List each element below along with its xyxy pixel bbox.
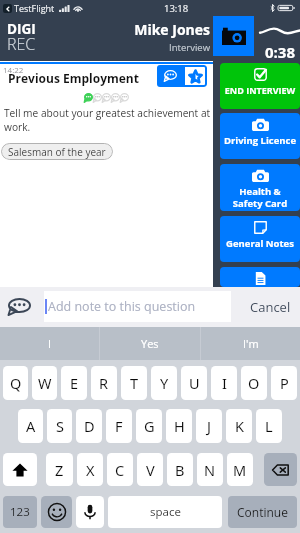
staticText: 0:38: [265, 42, 296, 62]
staticText: Previous Employment: [8, 70, 139, 86]
staticText: P: [280, 373, 289, 393]
button[interactable]: Continue: [228, 496, 297, 528]
button[interactable]: J: [196, 409, 222, 443]
button[interactable]: B: [167, 453, 193, 486]
staticText: END INTERVIEW: [220, 84, 300, 96]
button[interactable]: G: [136, 409, 162, 443]
staticText: TestFlight: [14, 2, 55, 14]
button[interactable]: A: [18, 409, 43, 443]
staticText: B: [175, 460, 185, 480]
button[interactable]: Cancel: [247, 291, 294, 323]
button[interactable]: D: [76, 409, 102, 443]
button[interactable]: Q: [3, 366, 28, 400]
staticText: Health & Safety Card: [220, 185, 300, 210]
staticText: J: [207, 416, 211, 436]
button[interactable]: O: [241, 366, 267, 400]
button[interactable]: Shift: [3, 453, 37, 486]
staticText: U: [189, 373, 200, 393]
button[interactable]: General Notes: [220, 216, 300, 262]
button[interactable]: Driving Licence: [220, 113, 300, 159]
staticText: T: [130, 373, 139, 393]
staticText: X: [86, 460, 95, 480]
staticText: S: [56, 416, 64, 436]
staticText: L: [265, 416, 273, 436]
button[interactable]: Backspace: [264, 453, 297, 486]
button[interactable]: END INTERVIEW: [220, 63, 300, 109]
staticText: Salesman of the year: [8, 145, 106, 159]
button[interactable]: Comments: [157, 65, 183, 87]
button[interactable]: [220, 267, 300, 287]
staticText: F: [115, 416, 123, 436]
staticText: V: [146, 460, 155, 480]
staticText: space: [150, 504, 181, 520]
staticText: 14:22: [3, 64, 24, 75]
button[interactable]: C: [107, 453, 133, 486]
button[interactable]: U: [181, 366, 207, 400]
staticText: Mike Jones: [134, 20, 210, 39]
button[interactable]: Health & Safety Card: [220, 164, 300, 211]
staticText: G: [144, 416, 155, 436]
staticText: Z: [55, 460, 64, 480]
staticText: I'm: [243, 336, 259, 351]
button[interactable]: M: [227, 453, 253, 486]
button[interactable]: F: [106, 409, 132, 443]
button[interactable]: Add note to this question: [44, 291, 231, 322]
button[interactable]: R: [91, 366, 117, 400]
staticText: I: [48, 336, 52, 351]
staticText: 13:18: [164, 2, 189, 15]
staticText: I: [222, 373, 227, 393]
button[interactable]: P: [271, 366, 297, 400]
staticText: General Notes: [220, 237, 300, 250]
button[interactable]: L: [256, 409, 282, 443]
button[interactable]: Salesman of the year: [1, 143, 113, 160]
staticText: DIGI: [7, 20, 36, 38]
button[interactable]: I: [0, 327, 99, 360]
button[interactable]: Y: [151, 366, 177, 400]
staticText: K: [235, 416, 244, 436]
button[interactable]: I'm: [201, 327, 300, 360]
staticText: D: [84, 416, 95, 436]
button[interactable]: H: [166, 409, 192, 443]
button[interactable]: V: [137, 453, 163, 486]
staticText: N: [204, 460, 216, 480]
button[interactable]: Favourite: [183, 65, 207, 87]
staticText: C: [115, 460, 125, 480]
staticText: Add note to this question: [48, 298, 196, 315]
staticText: E: [70, 373, 79, 393]
staticText: REC: [7, 33, 36, 55]
staticText: Continue: [237, 504, 288, 520]
button[interactable]: I: [211, 366, 237, 400]
button[interactable]: N: [197, 453, 223, 486]
button[interactable]: E: [61, 366, 87, 400]
button[interactable]: Emoji: [41, 496, 72, 528]
button[interactable]: 123: [3, 496, 37, 528]
staticText: R: [99, 373, 109, 393]
staticText: A: [26, 416, 36, 436]
staticText: Q: [10, 373, 22, 393]
staticText: W: [38, 373, 52, 393]
staticText: O: [248, 373, 260, 393]
staticText: Interview: [169, 41, 210, 54]
staticText: Yes: [141, 336, 159, 351]
button[interactable]: K: [226, 409, 252, 443]
staticText: 123: [10, 504, 30, 520]
staticText: M: [233, 460, 247, 480]
staticText: H: [174, 416, 185, 436]
button[interactable]: W: [32, 366, 57, 400]
button[interactable]: T: [121, 366, 147, 400]
button[interactable]: space: [108, 496, 222, 528]
button[interactable]: Dictation: [76, 496, 104, 528]
staticText: Cancel: [250, 298, 291, 316]
button[interactable]: X: [77, 453, 103, 486]
staticText: Y: [160, 373, 169, 393]
button[interactable]: Z: [46, 453, 73, 486]
button[interactable]: Take photo: [213, 16, 254, 56]
staticText: Tell me about your greatest achievement …: [4, 106, 213, 134]
button[interactable]: Yes: [100, 327, 200, 360]
button[interactable]: S: [47, 409, 72, 443]
staticText: Driving Licence: [220, 134, 300, 147]
